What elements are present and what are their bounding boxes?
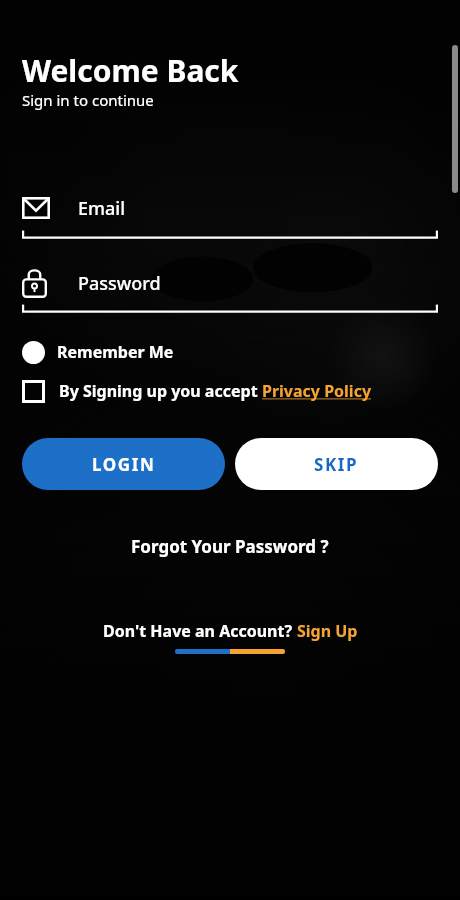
staticText: Welcome Back [22,50,239,91]
staticText: Password [78,271,161,296]
staticText: By Signing up you accept [59,380,262,402]
staticText: Sign in to continue [22,90,154,110]
other: Scrollbar [452,45,458,193]
staticText: Forgot Your Password ? [131,535,329,558]
button[interactable]: Email [22,186,438,230]
button[interactable]: Sign Up [297,620,358,642]
staticText: SKIP [314,453,359,476]
staticText: LOGIN [92,453,156,476]
staticText: Email [78,196,126,221]
button[interactable]: By Signing up you accept [22,377,372,405]
button[interactable]: Remember Me [22,338,174,366]
staticText: Remember Me [57,341,174,363]
button[interactable]: Forgot Your Password ? [0,532,460,560]
button[interactable]: Password [22,260,438,306]
staticText: Don't Have an Account? [103,620,297,642]
button[interactable]: SKIP [235,438,438,490]
button[interactable]: Privacy Policy [262,380,372,402]
button[interactable]: LOGIN [22,438,225,490]
